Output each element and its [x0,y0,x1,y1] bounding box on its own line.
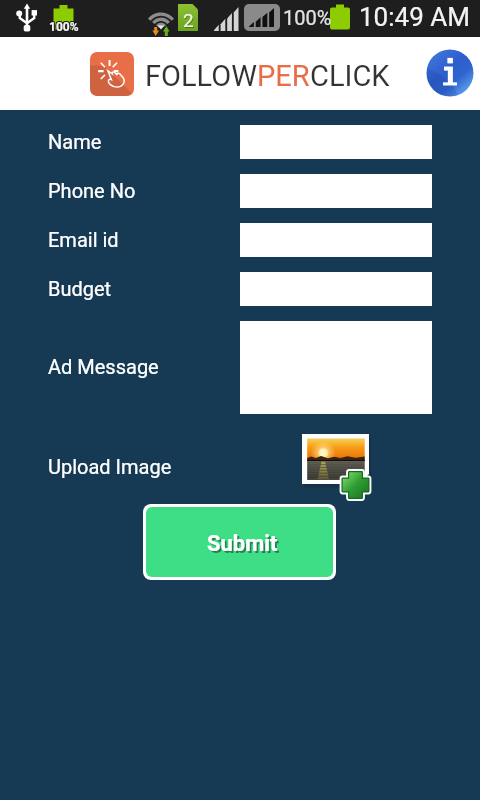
staticText: 10:49 AM [359,2,470,32]
button[interactable]: Submit [146,507,333,577]
staticText: 100% [49,21,79,35]
staticText: Phone No [48,179,136,202]
staticText: 100% [48,19,78,33]
staticText: 100% [48,20,78,34]
staticText: CLICK [310,59,390,93]
staticText: 2 [183,9,194,31]
staticText: PER [257,59,310,93]
staticText: Submit [209,533,280,559]
staticText: 100% [50,21,80,35]
staticText: 2 [184,10,195,32]
staticText: FOLLOW [145,59,257,93]
button[interactable]: Upload Image [302,434,376,504]
staticText: Name [48,130,102,153]
staticText: 100% [50,19,80,33]
staticText: 100% [49,20,79,34]
staticText: 100% [283,6,332,29]
staticText: Ad Message [48,355,159,378]
staticText: Email id [48,228,119,251]
staticText: Upload Image [48,455,172,478]
staticText: Budget [48,277,112,300]
staticText: Submit [207,531,278,557]
button[interactable]: Info [426,49,474,97]
staticText: 100% [49,19,79,33]
staticText: 100% [50,20,80,34]
staticText: 100% [48,21,78,35]
button[interactable]: FollowPerClick logo [90,52,134,96]
